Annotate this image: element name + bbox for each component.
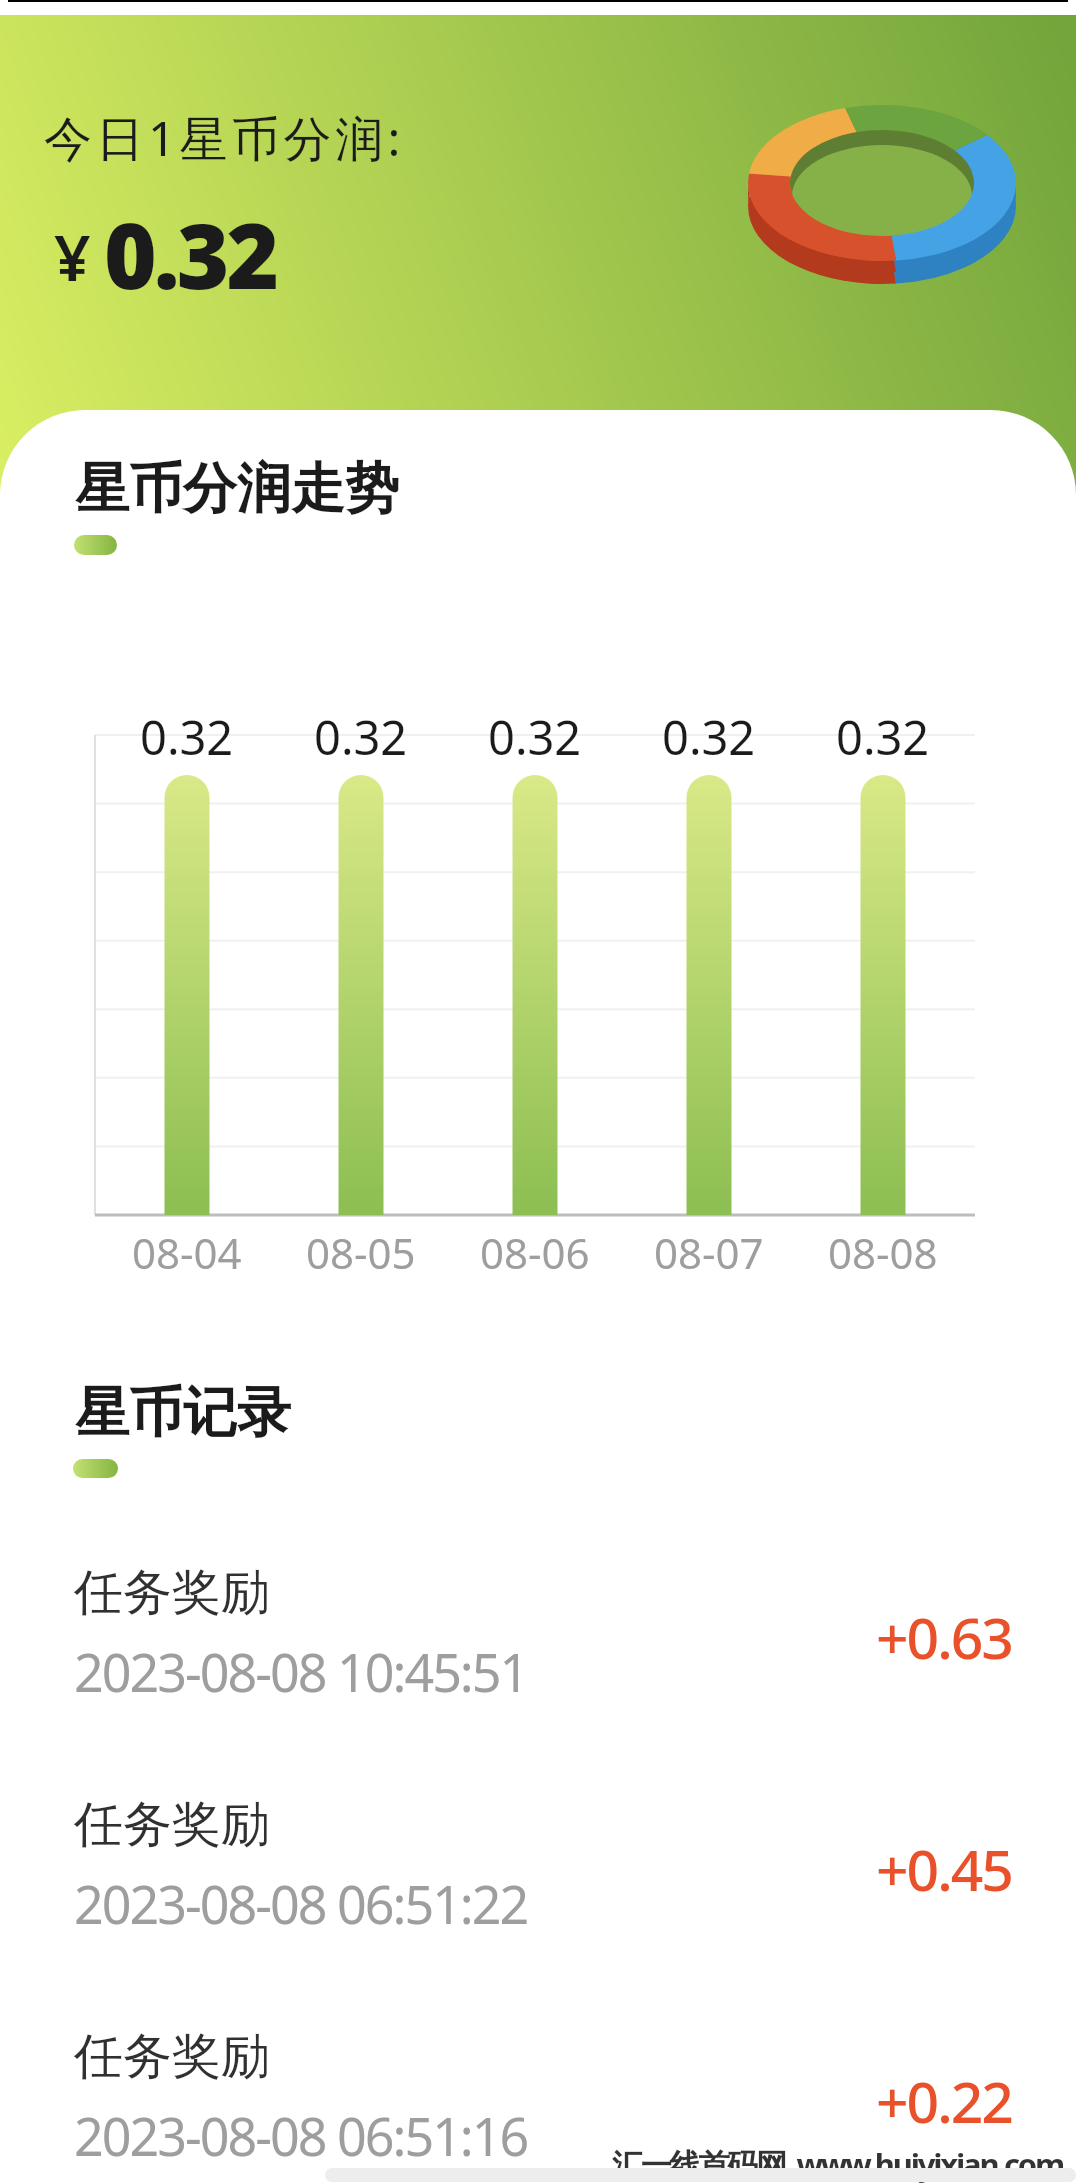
- staticText: 2023-08-08 10:45:51: [74, 1636, 528, 1707]
- staticText: 08-06: [480, 1224, 590, 1281]
- staticText: 2023-08-08 06:51:22: [74, 1868, 528, 1939]
- staticText: 08-04: [132, 1224, 242, 1281]
- staticText: 2023-08-08 06:51:16: [74, 2100, 528, 2171]
- staticText: +0.63: [876, 1598, 1012, 1676]
- staticText: 今日1星币分润:: [44, 105, 405, 171]
- staticText: 0.32: [104, 193, 277, 316]
- staticText: 任务奖励: [74, 1562, 270, 1624]
- staticText: 0.32: [140, 705, 234, 769]
- button[interactable]: 任务奖励: [0, 2026, 1076, 2184]
- staticText: 08-05: [306, 1224, 416, 1281]
- staticText: 任务奖励: [74, 1794, 270, 1856]
- staticText: 0.32: [488, 705, 582, 769]
- staticText: 0.32: [662, 705, 756, 769]
- button[interactable]: 任务奖励: [0, 1794, 1076, 1974]
- staticText: 任务奖励: [74, 2026, 270, 2088]
- staticText: 08-07: [654, 1224, 764, 1281]
- staticText: 星币分润走势: [75, 455, 399, 523]
- staticText: 0.32: [836, 705, 930, 769]
- staticText: ¥: [54, 213, 91, 300]
- staticText: 星币记录: [75, 1379, 291, 1447]
- staticText: +0.22: [876, 2062, 1012, 2140]
- staticText: 汇一线首码网 www.huiyixian.com: [612, 2143, 1063, 2184]
- staticText: 0.32: [314, 705, 408, 769]
- staticText: 08-08: [828, 1224, 938, 1281]
- staticText: +0.45: [876, 1830, 1012, 1908]
- button[interactable]: 任务奖励: [0, 1562, 1076, 1742]
